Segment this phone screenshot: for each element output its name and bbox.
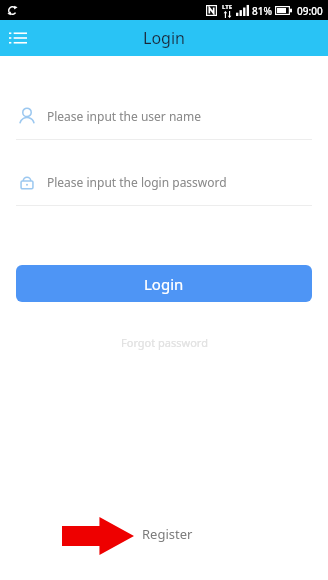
other: User name	[18, 107, 36, 125]
staticText: LTE	[222, 3, 233, 11]
button[interactable]: Forgot password	[111, 332, 218, 353]
staticText: Please input the login password	[47, 174, 227, 190]
staticText: Login	[143, 27, 185, 49]
other: Register pointer	[62, 517, 134, 555]
staticText: 81%	[252, 4, 272, 18]
staticText: Please input the user name	[47, 108, 202, 124]
button[interactable]: User name	[0, 104, 328, 128]
staticText: 09:00	[297, 4, 323, 18]
button[interactable]: Password	[0, 170, 328, 194]
button[interactable]: Login	[16, 265, 312, 302]
other: Password	[18, 173, 36, 191]
button[interactable]: Menu	[0, 20, 36, 56]
staticText: Login	[144, 274, 184, 294]
staticText: Forgot password	[121, 335, 208, 350]
staticText: Register	[142, 525, 193, 543]
button[interactable]: Register	[136, 517, 199, 551]
